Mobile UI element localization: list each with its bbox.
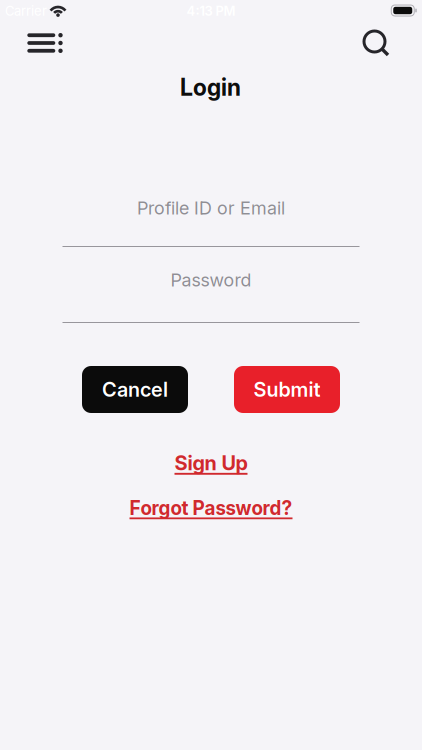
button[interactable]: Cancel <box>82 366 188 413</box>
textField[interactable]: Profile ID or Email <box>62 209 359 229</box>
secureTextField[interactable]: Password <box>62 285 359 305</box>
staticText: Forgot Password? <box>129 497 292 519</box>
staticText: Profile ID or Email <box>62 209 202 229</box>
staticText: Submit <box>253 378 320 401</box>
staticText: Password <box>170 269 251 291</box>
button[interactable]: Submit <box>234 366 340 413</box>
button[interactable]: Sign Up <box>174 451 247 475</box>
staticText: Cancel <box>102 378 168 401</box>
button[interactable]: Search <box>358 25 396 63</box>
staticText: Profile ID or Email <box>137 197 285 219</box>
staticText: Login <box>180 74 241 101</box>
staticText: 4:13 PM <box>186 3 235 19</box>
button[interactable]: Forgot Password? <box>129 497 292 519</box>
staticText: Sign Up <box>174 451 247 475</box>
staticText: Carrier <box>5 3 47 19</box>
button[interactable]: Menu <box>19 25 71 61</box>
